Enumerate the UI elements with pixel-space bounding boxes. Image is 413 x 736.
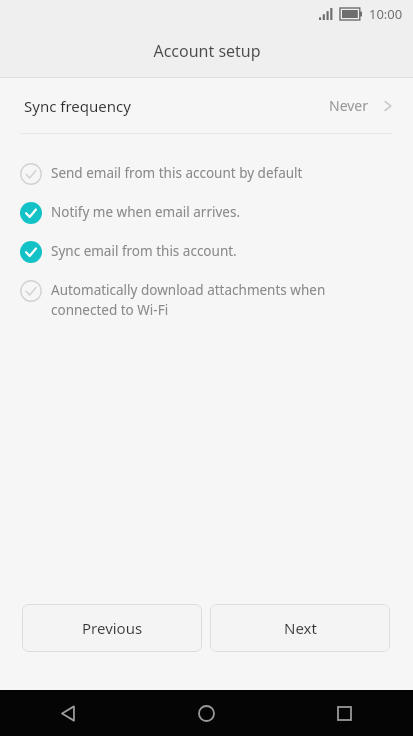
- button[interactable]: Home: [137, 690, 275, 736]
- staticText: Never: [329, 96, 369, 115]
- staticText: Automatically download attachments when …: [51, 281, 393, 319]
- staticText: Next: [284, 618, 317, 638]
- button[interactable]: Send email from this account by default: [0, 154, 413, 193]
- button[interactable]: Back: [0, 690, 137, 736]
- staticText: Account setup: [153, 40, 261, 62]
- button[interactable]: Automatically download attachments when …: [0, 271, 413, 327]
- button[interactable]: Notify me when email arrives.: [0, 193, 413, 232]
- button[interactable]: Previous: [22, 604, 202, 652]
- staticText: Previous: [82, 618, 143, 638]
- staticText: 10:00: [369, 5, 403, 23]
- staticText: Sync email from this account.: [51, 242, 237, 260]
- staticText: Send email from this account by default: [51, 164, 303, 182]
- staticText: Notify me when email arrives.: [51, 203, 241, 221]
- button[interactable]: Sync frequency: [0, 78, 413, 133]
- button[interactable]: Next: [210, 604, 390, 652]
- button[interactable]: Recent apps: [275, 690, 413, 736]
- button[interactable]: Sync email from this account.: [0, 232, 413, 271]
- staticText: Sync frequency: [24, 96, 131, 116]
